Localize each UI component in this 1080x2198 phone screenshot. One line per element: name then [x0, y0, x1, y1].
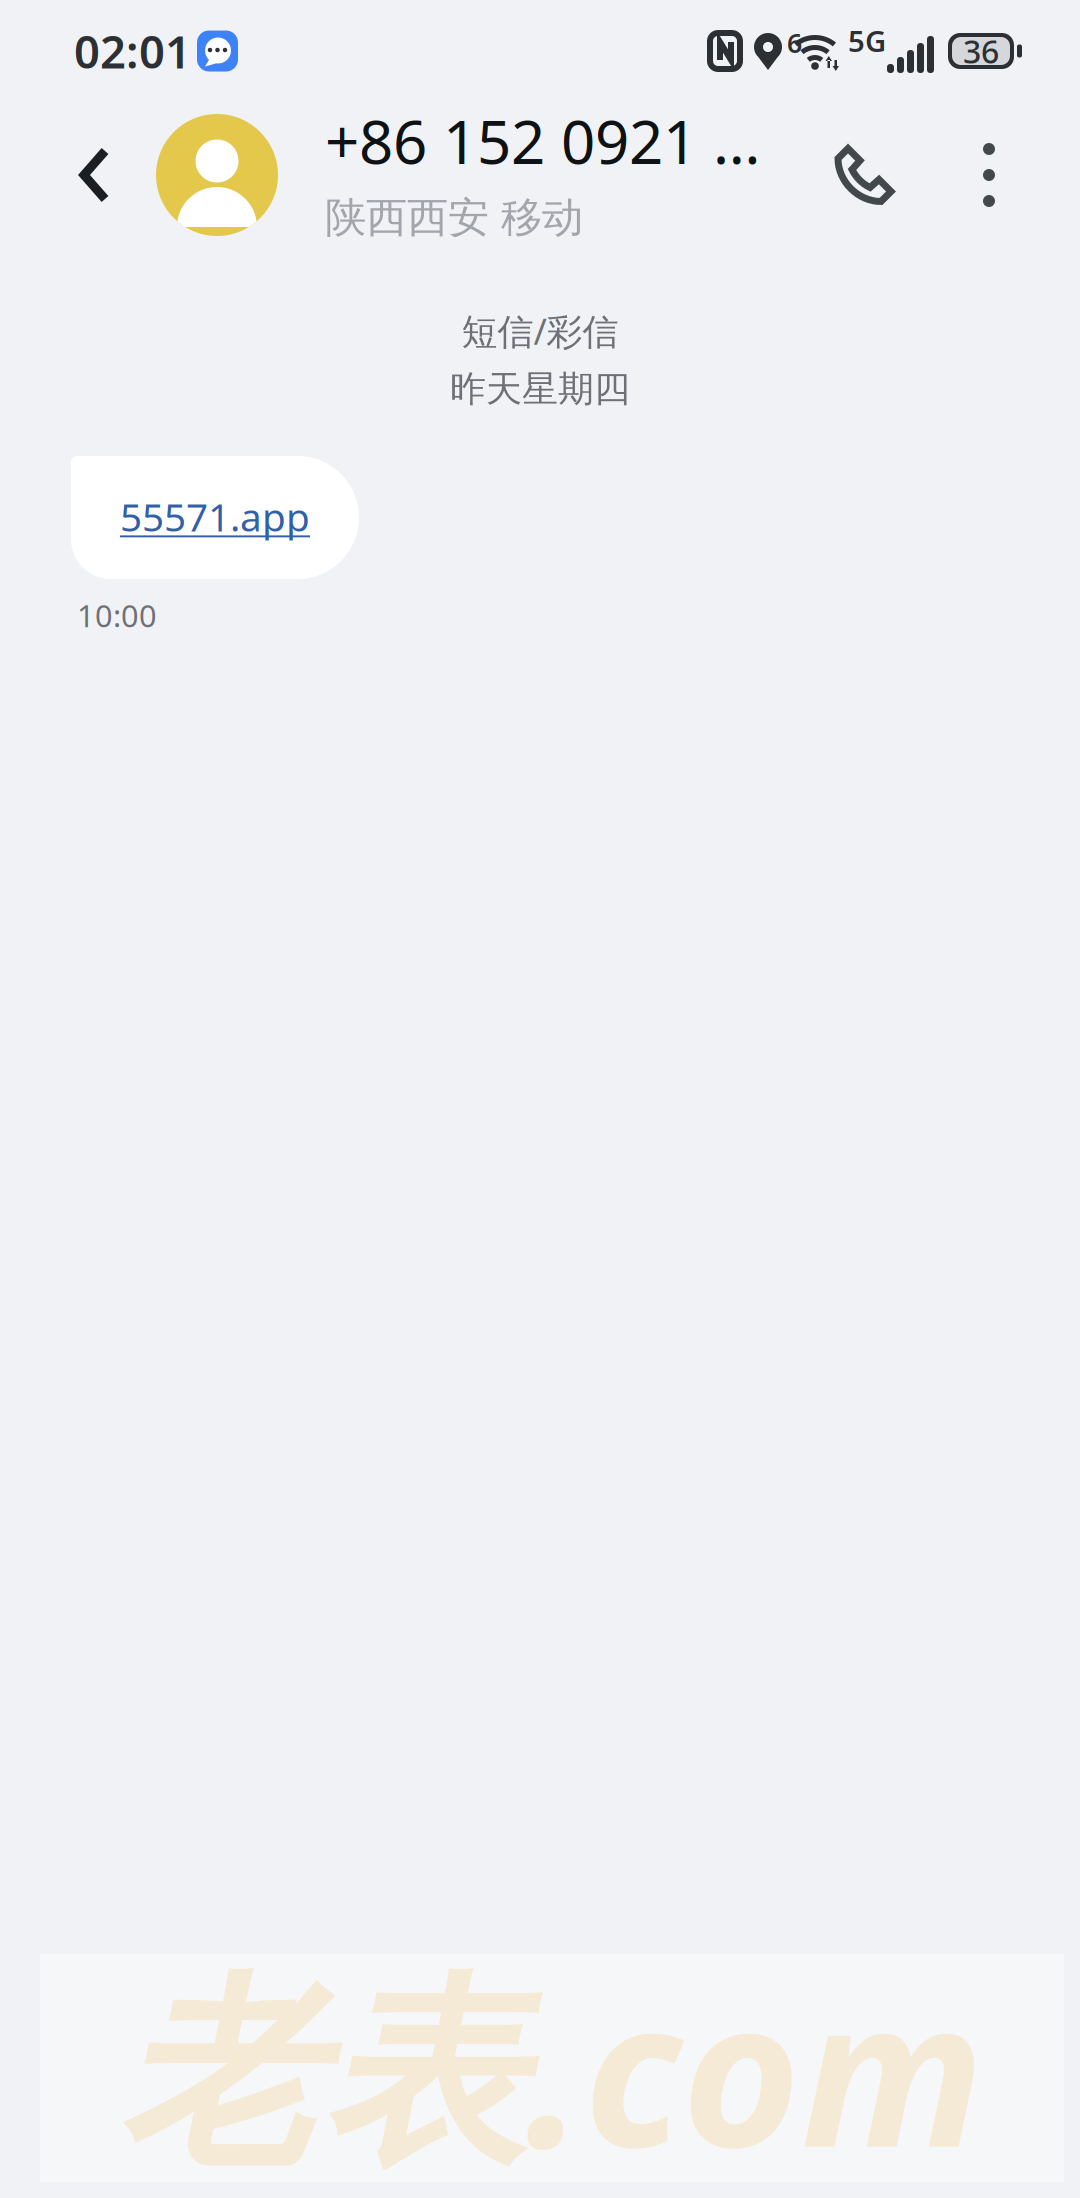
button[interactable]: Call [789, 110, 941, 239]
staticText: 6 [787, 25, 802, 60]
staticText: 36 [963, 30, 999, 72]
staticText: 短信/彩信 [461, 307, 618, 355]
staticText: 02:01 [74, 21, 191, 81]
staticText: 昨天星期四 [450, 367, 630, 411]
staticText: 5G [848, 21, 886, 60]
staticText: 老表.com [120, 1933, 984, 2198]
button[interactable]: 55571.app [71, 456, 359, 579]
staticText: +86 152 0921 … [325, 101, 760, 180]
staticText: 55571.app [120, 491, 310, 542]
staticText: 陕西西安 移动 [325, 192, 583, 243]
staticText: 10:00 [77, 595, 157, 636]
button[interactable]: Back [0, 113, 156, 237]
button[interactable]: More options [941, 110, 1080, 240]
